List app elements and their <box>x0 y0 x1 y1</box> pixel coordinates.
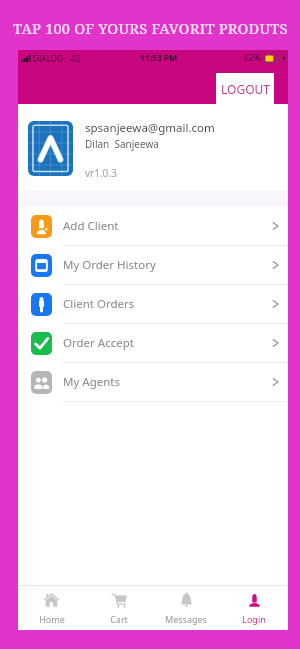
staticText: 11:53 PM <box>140 52 178 64</box>
button[interactable]: Login <box>220 586 288 630</box>
button[interactable]: Home <box>18 586 85 630</box>
staticText: Client Orders <box>63 296 135 312</box>
button[interactable]: Add Client <box>18 207 288 246</box>
button[interactable]: My Order History <box>18 246 288 285</box>
button[interactable]: My Agents <box>18 363 288 402</box>
staticText: My Order History <box>63 257 156 273</box>
staticText: Dilan Sanjeewa <box>85 137 159 151</box>
staticText: Home <box>39 613 65 625</box>
staticText: Add Client <box>63 218 119 234</box>
staticText: Login <box>242 613 266 625</box>
staticText: vr1.0.3 <box>85 166 117 180</box>
staticText: Messages <box>165 613 207 625</box>
staticText: Cart <box>110 613 128 625</box>
button[interactable]: LOGOUT <box>216 73 274 104</box>
staticText: 4G <box>70 53 81 64</box>
button[interactable]: Cart <box>85 586 152 630</box>
staticText: DIALOG <box>33 53 63 64</box>
staticText: Order Accept <box>63 335 134 351</box>
button[interactable]: Order Accept <box>18 324 288 363</box>
button[interactable]: Client Orders <box>18 285 288 324</box>
staticText: My Agents <box>63 374 120 390</box>
staticText: 62% <box>244 52 261 64</box>
button[interactable]: Messages <box>152 586 220 630</box>
staticText: spsanjeewa@gmail.com <box>85 120 215 136</box>
staticText: TAP 100 OF YOURS FAVORIT PRODUTS <box>13 18 288 38</box>
staticText: LOGOUT <box>221 81 270 97</box>
